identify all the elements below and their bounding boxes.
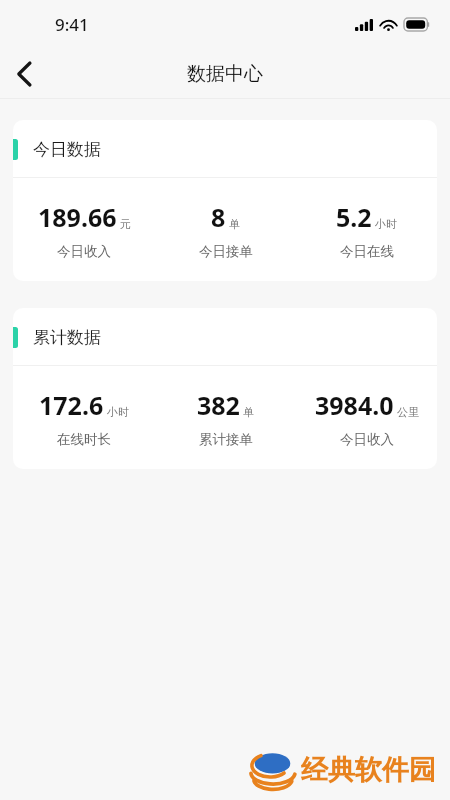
staticText: 累计接单: [199, 431, 253, 448]
staticText: 经典软件园: [301, 753, 436, 787]
staticText: 小时: [375, 217, 397, 231]
staticText: 小时: [107, 405, 129, 419]
staticText: 累计数据: [33, 327, 101, 348]
staticText: 单: [229, 217, 240, 231]
staticText: 8: [211, 200, 226, 234]
staticText: 今日收入: [340, 431, 394, 448]
staticText: 5.2: [336, 200, 372, 234]
staticText: 数据中心: [187, 62, 263, 86]
staticText: 今日接单: [199, 243, 253, 260]
staticText: 189.66: [38, 200, 117, 234]
staticText: 3984.0: [315, 388, 394, 422]
staticText: 今日数据: [33, 139, 101, 160]
staticText: 今日在线: [340, 243, 394, 260]
staticText: 9:41: [55, 13, 89, 36]
button[interactable]: 累计数据: [13, 308, 437, 469]
staticText: 在线时长: [57, 431, 111, 448]
staticText: 今日收入: [57, 243, 111, 260]
button[interactable]: Back: [0, 50, 48, 98]
staticText: 公里: [397, 405, 419, 419]
staticText: 382: [197, 388, 240, 422]
staticText: 172.6: [39, 388, 104, 422]
staticText: 单: [243, 405, 254, 419]
button[interactable]: 今日数据: [13, 120, 437, 281]
staticText: 元: [120, 217, 131, 231]
